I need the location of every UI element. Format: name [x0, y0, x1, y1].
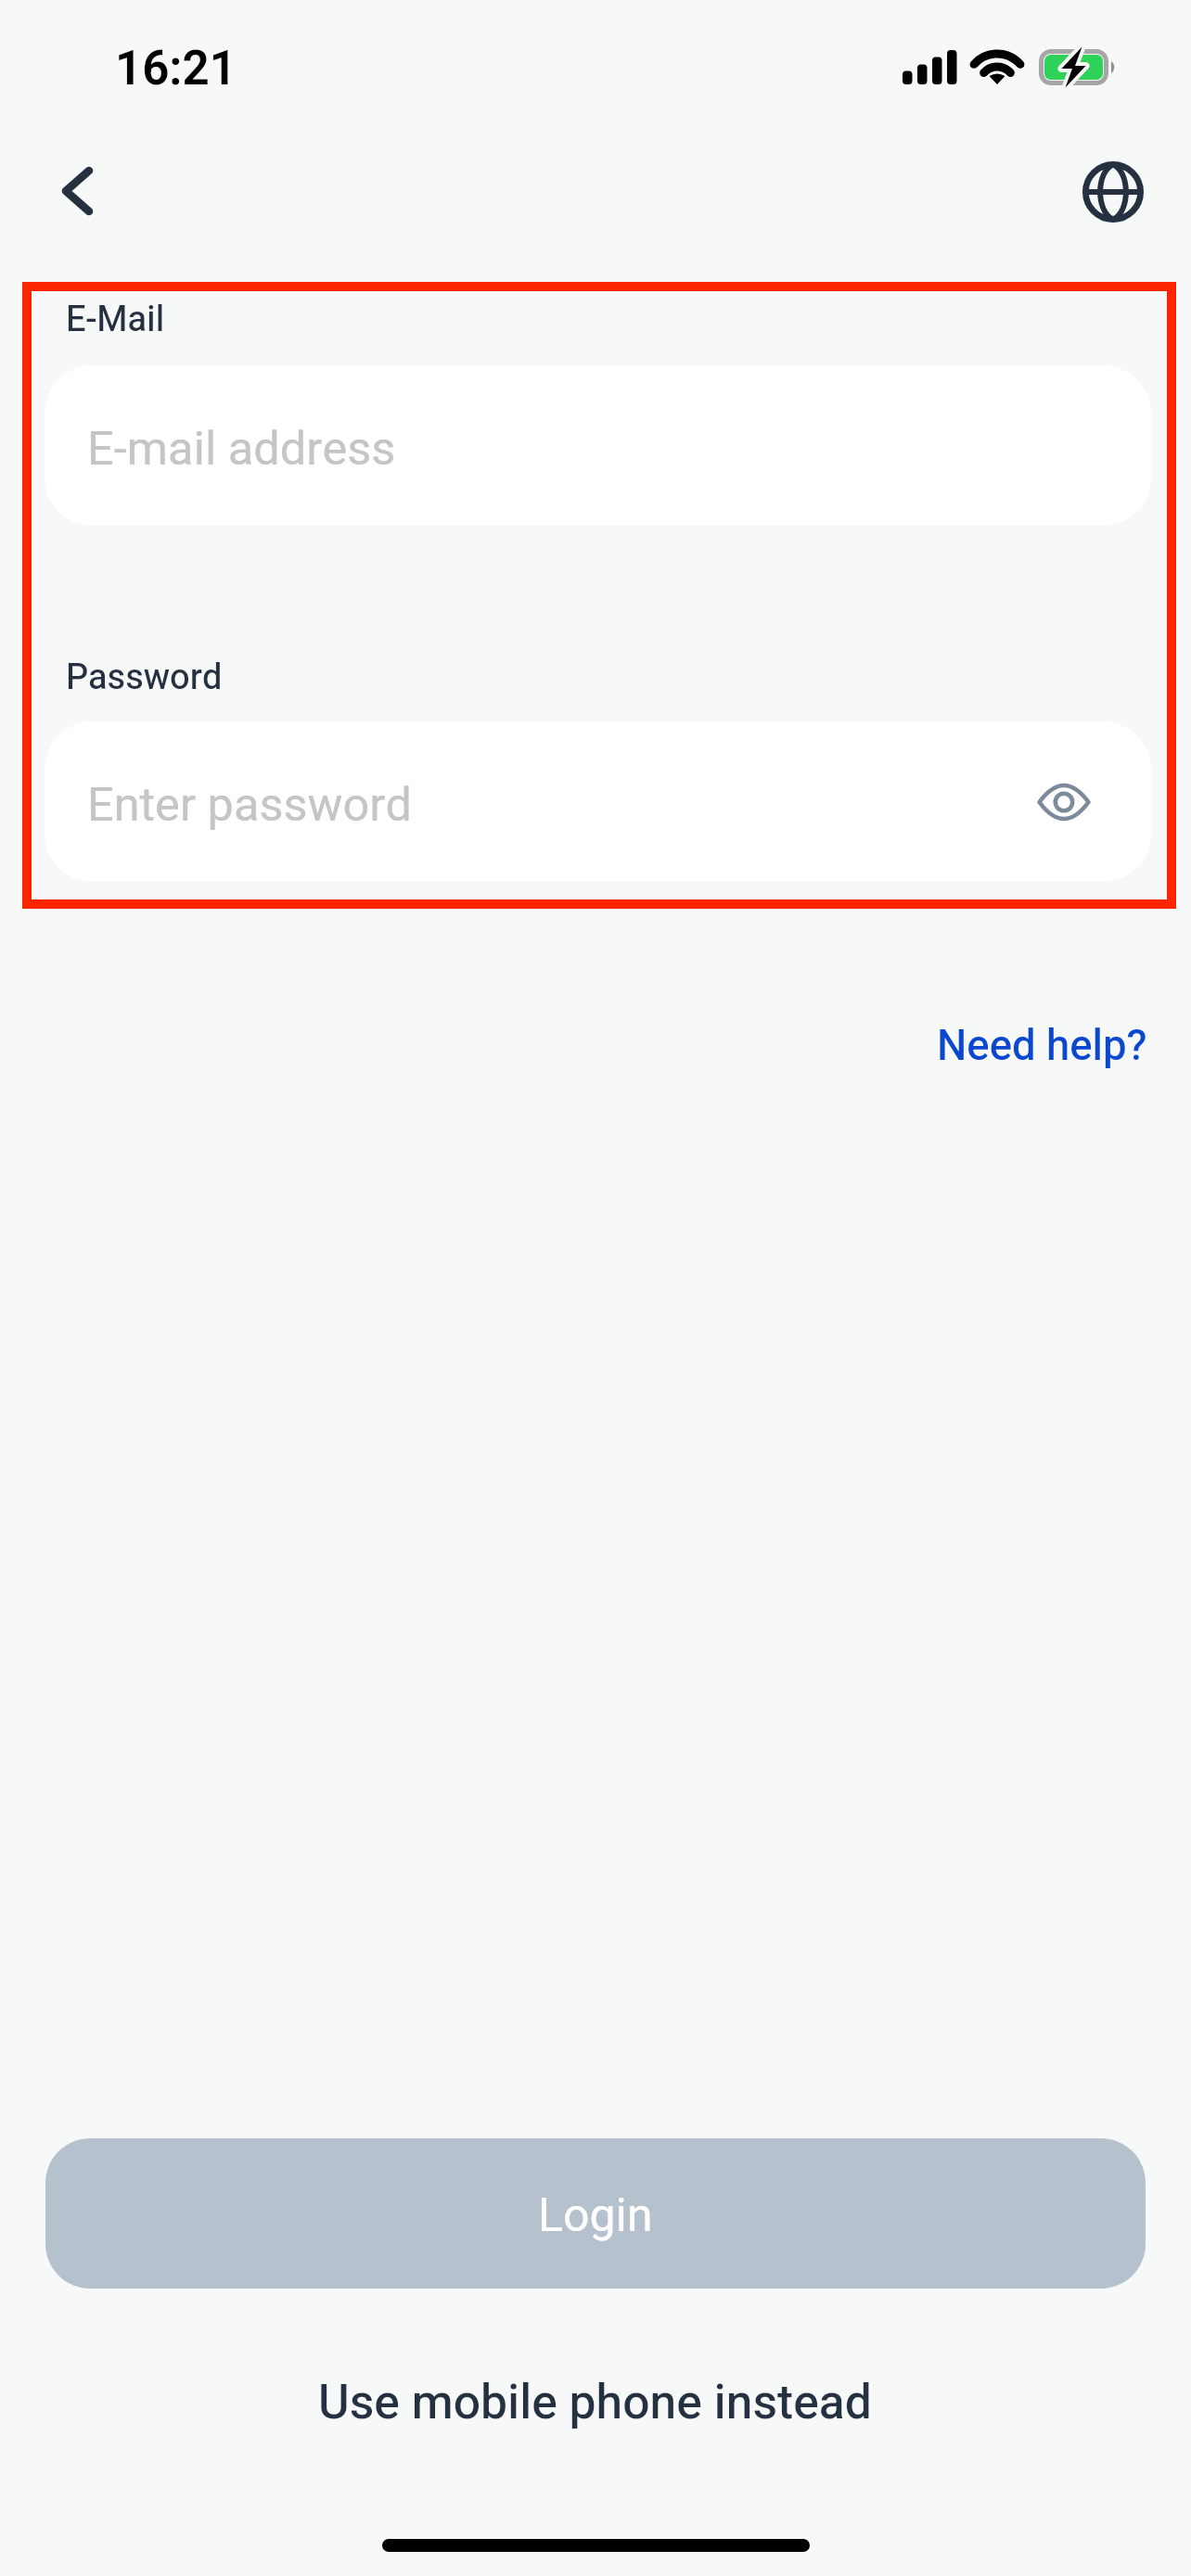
staticText: Login [538, 2183, 653, 2251]
button[interactable]: Change language [1062, 141, 1164, 243]
staticText: Use mobile phone instead [318, 2368, 872, 2439]
button[interactable]: Login [45, 2138, 1146, 2289]
button[interactable]: Use mobile phone instead [287, 2352, 903, 2455]
button[interactable]: Show password [1022, 760, 1106, 844]
button[interactable]: E-mail address [45, 365, 1151, 526]
button[interactable]: Need help? [909, 1001, 1175, 1092]
staticText: E-mail address [87, 415, 396, 484]
staticText: Password [66, 652, 223, 704]
button[interactable]: Back [29, 141, 131, 243]
staticText: E-Mail [66, 294, 165, 346]
staticText: 16:21 [115, 35, 237, 105]
staticText: Enter password [87, 772, 412, 840]
button[interactable]: Enter password [45, 721, 1151, 882]
staticText: Need help? [937, 1015, 1147, 1078]
